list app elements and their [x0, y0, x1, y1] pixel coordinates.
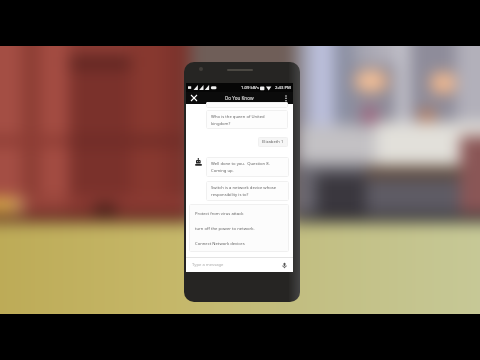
- button[interactable]: Close: [189, 93, 199, 103]
- button[interactable]: Well done to you. Question 8. Coming up.: [206, 157, 289, 177]
- staticText: 1.09 kB/s: [241, 85, 259, 91]
- staticText: 2:43 PM: [275, 85, 291, 91]
- staticText: Do You Know: [225, 95, 254, 101]
- button[interactable]: Voice input: [279, 260, 290, 271]
- button[interactable]: Protect from virus attack: [195, 206, 289, 221]
- staticText: turn off the power to network.: [195, 226, 255, 232]
- button[interactable]: Elizabeth 1: [258, 137, 288, 147]
- button[interactable]: Who is the queen of United kingdom?: [206, 110, 288, 129]
- button[interactable]: Switch is a network device whose respons…: [206, 181, 289, 201]
- button[interactable]: More options: [281, 93, 291, 103]
- staticText: Type a message: [192, 262, 224, 268]
- staticText: Well done to you. Question 8. Coming up.: [211, 161, 270, 174]
- staticText: Who is the queen of United kingdom?: [211, 114, 285, 127]
- staticText: Switch is a network device whose respons…: [211, 185, 286, 198]
- staticText: Elizabeth 1: [262, 139, 284, 145]
- button[interactable]: turn off the power to network.: [195, 221, 289, 236]
- staticText: Protect from virus attack: [195, 211, 244, 217]
- staticText: Connect Network devices: [195, 241, 245, 247]
- button[interactable]: Connect Network devices: [195, 236, 289, 251]
